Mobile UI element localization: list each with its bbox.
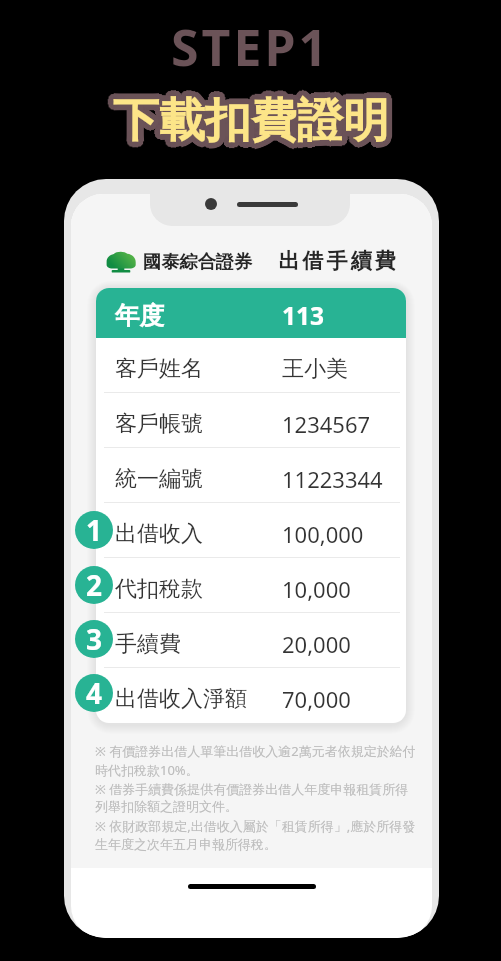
staticText: 下載扣費證明 [115,94,391,152]
staticText: 下載扣費證明 [109,93,385,151]
staticText: 下載扣費證明 [113,95,389,153]
staticText: 下載扣費證明 [109,95,385,153]
staticText: 下載扣費證明 [118,94,394,152]
staticText: 4 [86,674,103,712]
staticText: 下載扣費證明 [116,97,392,155]
button[interactable]: 年度 [96,288,406,338]
staticText: 下載扣費證明 [117,95,393,153]
staticText: 10,000 [282,574,351,604]
staticText: 下載扣費證明 [111,96,387,154]
staticText: 下載扣費證明 [116,92,392,150]
staticText: 下載扣費證明 [117,88,393,146]
staticText: 下載扣費證明 [116,95,392,153]
staticText: 下載扣費證明 [113,88,389,146]
staticText: 下載扣費證明 [111,97,387,155]
staticText: 出借手續費 [277,248,397,274]
staticText: 下載扣費證明 [116,90,392,148]
staticText: 下載扣費證明 [110,97,386,155]
button[interactable]: Step 4 [75,674,113,712]
staticText: 下載扣費證明 [114,94,390,152]
staticText: 客戶帳號 [115,410,282,438]
staticText: 下載扣費證明 [107,92,383,150]
staticText: 2 [86,566,103,604]
staticText: 下載扣費證明 [108,90,384,148]
staticText: 客戶姓名 [115,355,282,383]
button[interactable]: Step 3 [75,620,113,658]
staticText: 下載扣費證明 [112,90,388,148]
staticText: 下載扣費證明 [111,94,387,152]
staticText: 下載扣費證明 [112,87,388,145]
staticText: 下載扣費證明 [112,93,388,151]
staticText: 下載扣費證明 [113,93,389,151]
staticText: 下載扣費證明 [117,93,393,151]
staticText: 手續費 [115,630,282,658]
staticText: 下載扣費證明 [109,91,385,149]
staticText: 下載扣費證明 [117,89,393,147]
button[interactable]: 統一編號 [96,448,406,503]
staticText: 下載扣費證明 [111,92,387,150]
button[interactable]: 出借收入 [96,503,406,558]
staticText: 下載扣費證明 [119,92,395,150]
staticText: 下載扣費證明 [118,91,394,149]
staticText: 下載扣費證明 [116,88,392,146]
staticText: 下載扣費證明 [117,92,393,150]
staticText: 11223344 [282,464,383,494]
staticText: 1234567 [282,409,371,439]
button[interactable]: 代扣稅款 [96,558,406,613]
staticText: 出借收入 [115,520,282,548]
staticText: 下載扣費證明 [109,89,385,147]
button[interactable]: Step 2 [75,566,113,604]
staticText: 下載扣費證明 [117,94,393,152]
staticText: 下載扣費證明 [116,94,392,152]
staticText: 下載扣費證明 [114,89,390,147]
staticText: 下載扣費證明 [110,90,386,148]
staticText: 下載扣費證明 [115,88,391,146]
staticText: 下載扣費證明 [109,94,385,152]
staticText: 下載扣費證明 [114,96,390,154]
staticText: 下載扣費證明 [111,89,387,147]
staticText: 下載扣費證明 [116,89,392,147]
staticText: 下載扣費證明 [118,92,394,150]
staticText: 下載扣費證明 [112,88,388,146]
staticText: 下載扣費證明 [115,92,391,150]
staticText: 下載扣費證明 [113,87,389,145]
staticText: 下載扣費證明 [111,87,387,145]
staticText: 下載扣費證明 [115,90,391,148]
staticText: 下載扣費證明 [113,92,389,150]
staticText: 下載扣費證明 [116,87,392,145]
staticText: 下載扣費證明 [113,90,389,148]
staticText: 下載扣費證明 [108,91,384,149]
staticText: 出借收入淨額 [115,685,282,713]
staticText: 1 [86,511,103,549]
staticText: 下載扣費證明 [114,92,390,150]
button[interactable]: 客戶帳號 [96,393,406,448]
button[interactable]: 手續費 [96,613,406,668]
staticText: 下載扣費證明 [114,95,390,153]
staticText: 下載扣費證明 [112,97,388,155]
staticText: 下載扣費證明 [111,88,387,146]
staticText: 下載扣費證明 [112,94,388,152]
staticText: 下載扣費證明 [108,89,384,147]
staticText: 下載扣費證明 [111,90,387,148]
staticText: 下載扣費證明 [117,91,393,149]
staticText: 下載扣費證明 [116,91,392,149]
staticText: 下載扣費證明 [112,95,388,153]
button[interactable]: 客戶姓名 [96,338,406,393]
staticText: STEP1 [171,13,331,81]
staticText: ※ 依財政部規定,出借收入屬於「租賃所得」,應於所得發 [95,817,416,835]
button[interactable]: 出借收入淨額 [96,668,406,723]
staticText: 下載扣費證明 [118,89,394,147]
staticText: 下載扣費證明 [115,87,391,145]
staticText: 下載扣費證明 [114,97,390,155]
staticText: ※ 有價證券出借人單筆出借收入逾2萬元者依規定於給付 [95,742,416,760]
staticText: 下載扣費證明 [117,96,393,154]
staticText: 下載扣費證明 [110,96,386,154]
staticText: 下載扣費證明 [109,88,385,146]
staticText: 下載扣費證明 [113,91,389,149]
staticText: 代扣稅款 [115,575,282,603]
staticText: 王小美 [282,355,348,383]
staticText: 下載扣費證明 [114,93,390,151]
staticText: 下載扣費證明 [113,98,389,156]
staticText: 下載扣費證明 [115,97,391,155]
button[interactable]: Step 1 [75,511,113,549]
